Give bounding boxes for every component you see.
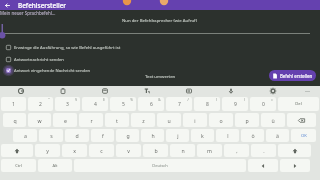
staticText: 3 — [66, 101, 69, 108]
staticText: l — [227, 132, 229, 139]
staticText: 6 — [150, 101, 153, 108]
staticText: = — [271, 98, 273, 102]
button[interactable]: Alt — [38, 159, 72, 172]
button[interactable]: Erzwinge die Ausführung, so wie Befehl a… — [0, 43, 320, 52]
button[interactable]: Google Assistant — [0, 86, 42, 96]
staticText: § — [75, 98, 77, 102]
button[interactable]: Voice input — [210, 86, 252, 96]
button[interactable]: Stickers — [84, 86, 126, 96]
button[interactable]: Befehl erstellen — [269, 70, 316, 81]
button[interactable]: Shift — [1, 144, 33, 157]
button[interactable]: a — [13, 129, 37, 142]
button[interactable]: , — [224, 144, 249, 157]
button[interactable]: b — [143, 144, 168, 157]
button[interactable]: Shift — [278, 144, 311, 157]
button[interactable]: t — [105, 113, 129, 127]
button[interactable]: p — [235, 113, 259, 127]
staticText: y — [46, 147, 49, 154]
button[interactable]: 1 — [1, 97, 26, 111]
button[interactable]: m — [197, 144, 222, 157]
staticText: 7 — [178, 101, 181, 108]
button[interactable]: Backspace — [287, 113, 316, 127]
button[interactable]: ö — [241, 129, 264, 142]
staticText: w — [37, 117, 42, 124]
button[interactable]: z — [131, 113, 155, 127]
button[interactable]: 5 — [110, 97, 136, 111]
button[interactable]: n — [170, 144, 195, 157]
button[interactable]: w — [28, 113, 51, 127]
staticText: v — [127, 147, 130, 154]
staticText: h — [151, 132, 155, 139]
button[interactable]: More — [294, 86, 320, 96]
staticText: 8 — [206, 101, 209, 108]
staticText: t — [116, 117, 118, 124]
button[interactable]: v — [116, 144, 141, 157]
button[interactable]: o — [209, 113, 233, 127]
button[interactable]: Clipboard — [42, 86, 84, 96]
button[interactable]: 6 — [138, 97, 164, 111]
button[interactable]: Antwort eingehende Nachricht senden — [0, 66, 320, 75]
button[interactable]: Text umwerten — [145, 73, 176, 79]
staticText: d — [75, 132, 79, 139]
button[interactable]: r — [79, 113, 103, 127]
button[interactable]: ä — [266, 129, 289, 142]
button[interactable]: f — [91, 129, 114, 142]
button[interactable]: Deutsch — [74, 159, 246, 172]
staticText: o — [219, 117, 223, 124]
button[interactable]: Antwortnachricht senden — [0, 55, 320, 64]
button[interactable]: 9 — [222, 97, 248, 111]
button[interactable]: u — [157, 113, 181, 127]
button[interactable]: 0 — [250, 97, 276, 111]
staticText: s — [50, 132, 53, 139]
button[interactable]: 4 — [82, 97, 108, 111]
staticText: Nun der Befehlssprecher (wie Aufruf) — [122, 17, 198, 23]
staticText: ü — [271, 117, 275, 124]
staticText: i — [194, 117, 196, 124]
staticText: % — [130, 98, 133, 102]
button[interactable]: i — [183, 113, 207, 127]
button[interactable]: j — [166, 129, 189, 142]
staticText: m — [207, 147, 212, 154]
button[interactable]: ü — [261, 113, 285, 127]
button[interactable]: 3 — [55, 97, 80, 111]
button[interactable]: h — [141, 129, 164, 142]
button[interactable]: x — [62, 144, 87, 157]
button[interactable]: k — [191, 129, 214, 142]
button[interactable]: OK — [291, 129, 316, 142]
button[interactable]: l — [216, 129, 239, 142]
button[interactable]: s — [39, 129, 63, 142]
button[interactable]: e — [53, 113, 77, 127]
staticText: z — [142, 117, 145, 124]
button[interactable]: 8 — [194, 97, 220, 111]
button[interactable]: g — [116, 129, 139, 142]
staticText: ö — [251, 132, 255, 139]
staticText: " — [48, 98, 50, 102]
staticText: Erzwinge die Ausführung, so wie Befehl a… — [14, 45, 121, 51]
button[interactable]: Left — [248, 159, 278, 172]
button[interactable]: GIF — [168, 86, 210, 96]
button[interactable]: Del — [278, 97, 319, 111]
staticText: & — [158, 98, 161, 102]
staticText: 2 — [39, 101, 42, 108]
staticText: a — [24, 132, 27, 139]
button[interactable]: 7 — [166, 97, 192, 111]
staticText: e — [64, 117, 67, 124]
staticText: q — [13, 117, 17, 124]
button[interactable]: y — [35, 144, 60, 157]
button[interactable]: 2 — [28, 97, 53, 111]
staticText: n — [181, 147, 185, 154]
staticText: Alt — [52, 163, 58, 168]
staticText: k — [201, 132, 204, 139]
button[interactable]: Ctrl — [1, 159, 36, 172]
staticText: Deutsch — [152, 163, 168, 168]
button[interactable]: d — [65, 129, 89, 142]
button[interactable]: Settings — [252, 86, 294, 96]
staticText: Befehl erstellen — [280, 73, 313, 79]
staticText: / — [187, 98, 189, 102]
button[interactable]: Translate — [126, 86, 168, 96]
button[interactable]: Back — [2, 0, 12, 10]
button[interactable]: Right — [280, 159, 310, 172]
button[interactable]: c — [89, 144, 114, 157]
button[interactable]: q — [3, 113, 26, 127]
